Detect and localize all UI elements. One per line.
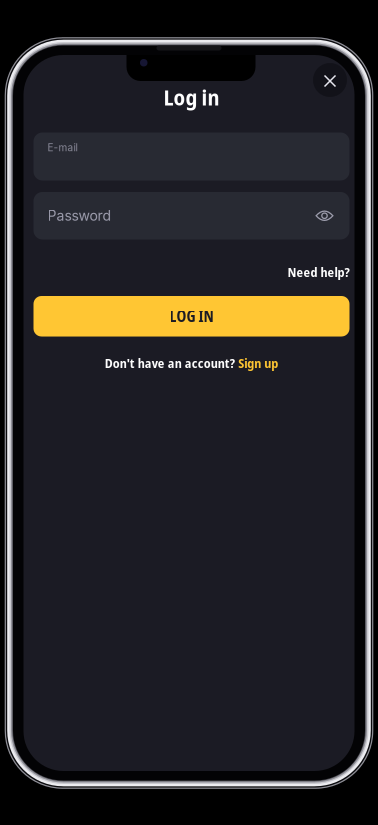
button[interactable]: Need help? [33,263,349,281]
button[interactable]: E-mail [33,132,349,180]
staticText: Log in [163,82,219,112]
button[interactable]: LOG IN [33,296,349,336]
staticText: E-mail [47,141,77,154]
button[interactable]: Password [33,192,349,239]
staticText: LOG IN [169,306,213,326]
staticText: Need help? [287,263,349,281]
staticText: Sign up [238,354,278,372]
staticText: Don't have an account? [105,354,235,372]
button[interactable]: Sign up [238,354,278,372]
button[interactable]: Close [313,63,347,97]
staticText: Password [47,207,111,224]
